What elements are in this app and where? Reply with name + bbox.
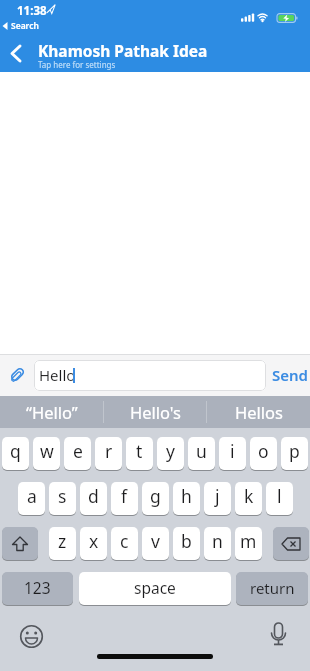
- staticText: f: [121, 484, 128, 508]
- button[interactable]: n: [204, 527, 231, 560]
- button[interactable]: g: [142, 482, 169, 515]
- staticText: return: [250, 578, 295, 598]
- button[interactable]: 123: [2, 572, 73, 605]
- button[interactable]: y: [157, 437, 184, 470]
- button[interactable]: [17, 622, 46, 651]
- staticText: Tap here for settings: [38, 59, 116, 70]
- button[interactable]: Hellos: [207, 396, 310, 428]
- button[interactable]: j: [204, 482, 231, 515]
- button[interactable]: [2, 527, 38, 560]
- staticText: 11:38: [17, 3, 47, 19]
- staticText: Hello's: [130, 401, 181, 423]
- staticText: s: [58, 484, 67, 508]
- staticText: c: [120, 529, 129, 553]
- staticText: 123: [24, 577, 51, 598]
- staticText: o: [258, 439, 269, 463]
- button[interactable]: space: [79, 572, 231, 605]
- staticText: x: [89, 529, 99, 553]
- staticText: b: [181, 529, 192, 553]
- staticText: i: [230, 439, 235, 463]
- button[interactable]: b: [173, 527, 200, 560]
- button[interactable]: v: [142, 527, 169, 560]
- staticText: k: [244, 484, 254, 508]
- button[interactable]: d: [80, 482, 107, 515]
- button[interactable]: k: [235, 482, 262, 515]
- button[interactable]: p: [281, 437, 308, 470]
- button[interactable]: a: [18, 482, 45, 515]
- button[interactable]: l: [266, 482, 293, 515]
- staticText: Khamosh Pathak Idea: [38, 40, 208, 61]
- staticText: “Hello”: [26, 401, 78, 423]
- staticText: Hellos: [235, 401, 283, 423]
- staticText: e: [73, 439, 83, 463]
- button[interactable]: e: [64, 437, 91, 470]
- staticText: t: [136, 439, 143, 463]
- staticText: u: [196, 439, 207, 463]
- button[interactable]: x: [80, 527, 107, 560]
- button[interactable]: r: [95, 437, 122, 470]
- button[interactable]: [34, 360, 266, 391]
- staticText: g: [150, 484, 161, 508]
- staticText: n: [212, 529, 223, 553]
- staticText: h: [181, 484, 192, 508]
- button[interactable]: [264, 622, 293, 651]
- staticText: space: [134, 577, 176, 598]
- staticText: y: [166, 439, 175, 463]
- button[interactable]: return: [236, 572, 308, 605]
- staticText: p: [289, 439, 300, 463]
- staticText: z: [58, 529, 67, 553]
- button[interactable]: Tap here for settings: [38, 59, 158, 71]
- button[interactable]: Send: [270, 362, 310, 388]
- button[interactable]: c: [111, 527, 138, 560]
- button[interactable]: Hello's: [104, 396, 206, 428]
- button[interactable]: m: [235, 527, 262, 560]
- button[interactable]: i: [219, 437, 246, 470]
- staticText: w: [40, 439, 54, 463]
- staticText: m: [240, 529, 257, 553]
- staticText: Send: [272, 365, 308, 385]
- staticText: Search: [11, 20, 39, 32]
- button[interactable]: z: [49, 527, 76, 560]
- button[interactable]: [273, 527, 309, 560]
- button[interactable]: f: [111, 482, 138, 515]
- button[interactable]: t: [126, 437, 153, 470]
- button[interactable]: h: [173, 482, 200, 515]
- button[interactable]: “Hello”: [0, 396, 103, 428]
- staticText: r: [105, 439, 113, 463]
- staticText: l: [277, 484, 282, 508]
- button[interactable]: o: [250, 437, 277, 470]
- button[interactable]: w: [33, 437, 60, 470]
- staticText: d: [88, 484, 99, 508]
- staticText: a: [27, 484, 37, 508]
- button[interactable]: s: [49, 482, 76, 515]
- button[interactable]: [0, 36, 34, 70]
- button[interactable]: [6, 364, 28, 386]
- staticText: v: [151, 529, 160, 553]
- staticText: Hello: [39, 365, 76, 385]
- button[interactable]: q: [2, 437, 29, 470]
- button[interactable]: u: [188, 437, 215, 470]
- staticText: q: [10, 439, 21, 463]
- staticText: j: [215, 484, 220, 508]
